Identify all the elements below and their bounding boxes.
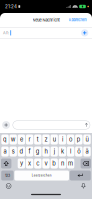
- staticText: Neue Nachricht: [32, 18, 59, 22]
- staticText: g: [36, 148, 40, 155]
- staticText: n: [61, 160, 64, 167]
- button[interactable]: s: [9, 146, 17, 156]
- button[interactable]: q: [1, 134, 9, 144]
- staticText: s: [12, 148, 15, 155]
- staticText: 21:24: [5, 4, 17, 9]
- button[interactable]: Eingabe: [70, 170, 91, 180]
- button[interactable]: h: [42, 146, 50, 156]
- staticText: t: [37, 136, 39, 143]
- staticText: p: [77, 136, 81, 143]
- staticText: j: [54, 148, 55, 155]
- button[interactable]: Anhang hinzufügen: [2, 120, 11, 129]
- button[interactable]: y: [18, 158, 25, 168]
- button[interactable]: f: [26, 146, 33, 156]
- button[interactable]: x: [26, 158, 33, 168]
- staticText: b: [52, 160, 56, 167]
- staticText: 123: [5, 173, 10, 178]
- staticText: y: [20, 160, 23, 167]
- button[interactable]: m: [67, 158, 74, 168]
- staticText: z: [44, 136, 47, 143]
- button[interactable]: ö: [75, 146, 82, 156]
- button[interactable]: c: [34, 158, 41, 168]
- button[interactable]: o: [67, 134, 74, 144]
- staticText: o: [69, 136, 72, 143]
- button[interactable]: k: [59, 146, 66, 156]
- staticText: l: [70, 148, 71, 155]
- staticText: An:: [3, 30, 9, 35]
- staticText: c: [36, 160, 39, 167]
- staticText: k: [61, 148, 64, 155]
- staticText: d: [19, 148, 23, 155]
- button[interactable]: d: [18, 146, 25, 156]
- staticText: q: [3, 136, 7, 143]
- staticText: e: [20, 136, 23, 143]
- button[interactable]: Emoji: [4, 181, 14, 191]
- staticText: w: [11, 136, 16, 143]
- button[interactable]: Kontakt hinzufügen: [80, 28, 89, 37]
- staticText: Leerzeichen: [32, 174, 52, 177]
- button[interactable]: Umschalt: [1, 158, 11, 168]
- staticText: Abbrechen: [68, 18, 86, 22]
- button[interactable]: e: [18, 134, 25, 144]
- button[interactable]: Diktat: [78, 181, 88, 191]
- staticText: m: [68, 160, 73, 167]
- staticText: ö: [77, 148, 80, 155]
- button[interactable]: ü: [83, 134, 91, 144]
- button[interactable]: i: [59, 134, 66, 144]
- staticText: r: [29, 136, 31, 143]
- staticText: ä: [85, 148, 88, 155]
- button[interactable]: g: [34, 146, 41, 156]
- button[interactable]: j: [50, 146, 58, 156]
- button[interactable]: n: [59, 158, 66, 168]
- button[interactable]: ä: [83, 146, 91, 156]
- staticText: v: [44, 160, 47, 167]
- staticText: ü: [85, 136, 88, 143]
- button[interactable]: z: [42, 134, 50, 144]
- button[interactable]: u: [50, 134, 58, 144]
- button[interactable]: w: [9, 134, 17, 144]
- button[interactable]: Abbrechen: [66, 15, 88, 25]
- button[interactable]: Löschen: [81, 158, 91, 168]
- staticText: u: [53, 136, 56, 143]
- button[interactable]: r: [26, 134, 33, 144]
- button[interactable]: v: [42, 158, 50, 168]
- button[interactable]: p: [75, 134, 82, 144]
- staticText: a: [3, 148, 6, 155]
- button[interactable]: 123: [1, 170, 14, 180]
- button[interactable]: a: [1, 146, 9, 156]
- button[interactable]: t: [34, 134, 41, 144]
- staticText: f: [29, 148, 31, 155]
- button[interactable]: b: [50, 158, 58, 168]
- staticText: x: [28, 160, 31, 167]
- button[interactable]: l: [67, 146, 74, 156]
- staticText: i: [62, 136, 63, 143]
- button[interactable]: Leerzeichen: [14, 170, 69, 180]
- staticText: h: [44, 148, 47, 155]
